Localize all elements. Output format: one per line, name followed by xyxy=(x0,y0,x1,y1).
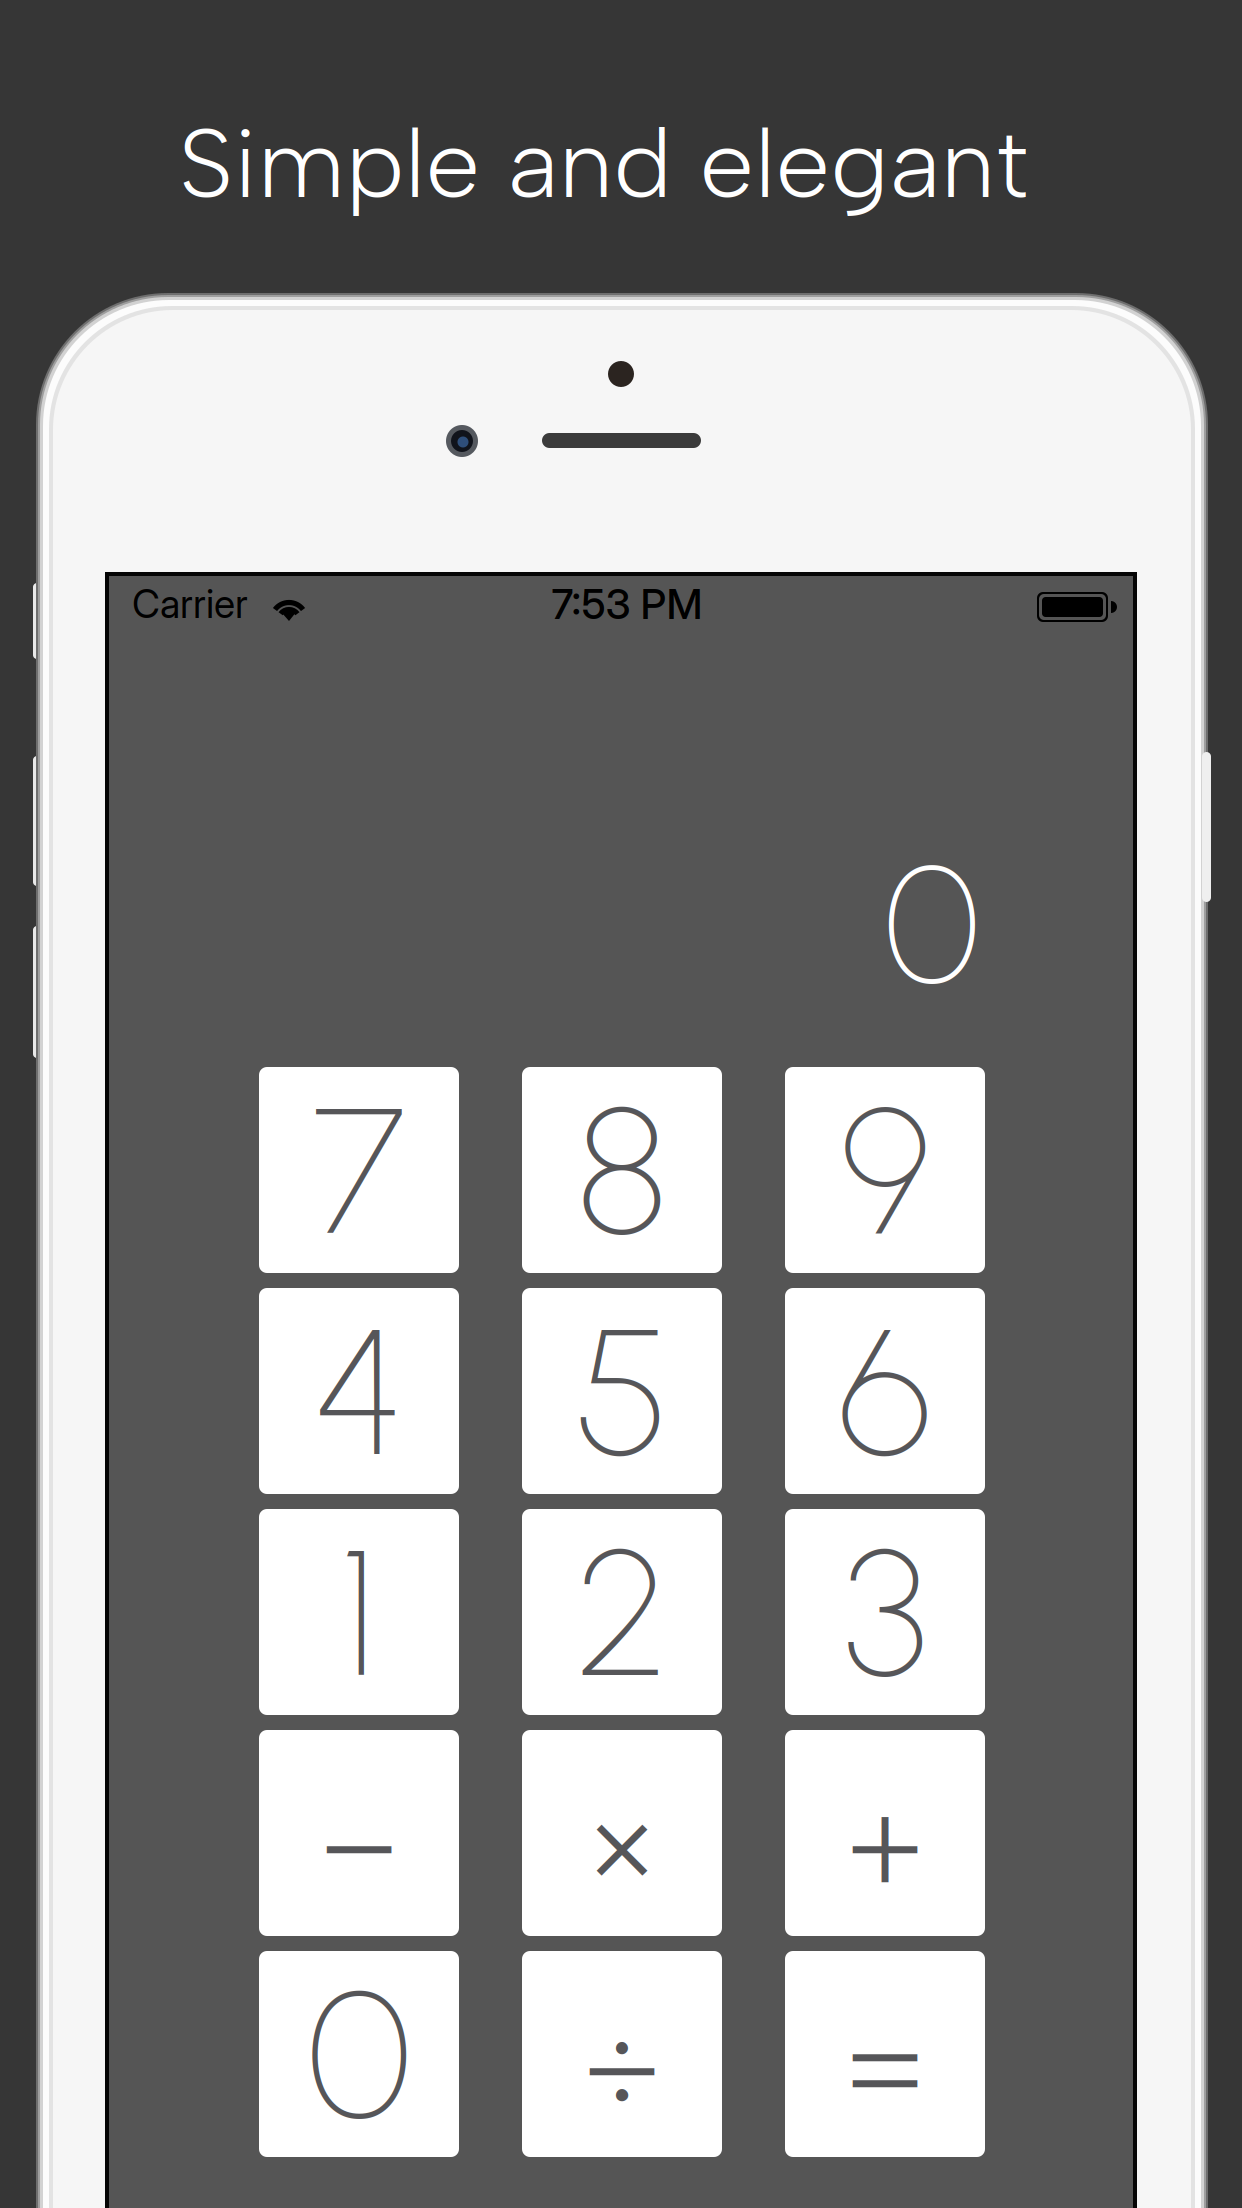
button[interactable]: 7 xyxy=(259,1067,459,1273)
staticText: 0 xyxy=(307,1949,411,2161)
staticText: = xyxy=(847,1987,922,2143)
button[interactable]: × xyxy=(522,1730,722,1936)
staticText: + xyxy=(847,1766,922,1922)
staticText: 6 xyxy=(838,1286,932,1498)
button[interactable]: + xyxy=(785,1730,985,1936)
button[interactable]: 5 xyxy=(522,1288,722,1494)
staticText: – xyxy=(319,1766,399,1922)
button[interactable]: 6 xyxy=(785,1288,985,1494)
button[interactable]: 3 xyxy=(785,1509,985,1715)
button[interactable]: 4 xyxy=(259,1288,459,1494)
button[interactable]: = xyxy=(785,1951,985,2157)
staticText: 7 xyxy=(312,1065,405,1277)
staticText: 8 xyxy=(576,1065,667,1277)
button[interactable]: 0 xyxy=(259,1951,459,2157)
staticText: 9 xyxy=(840,1065,930,1277)
staticText: 3 xyxy=(843,1507,927,1719)
staticText: Simple and elegant xyxy=(178,105,1029,221)
button[interactable]: ÷ xyxy=(522,1951,722,2157)
staticText: 0 xyxy=(884,827,980,1023)
button[interactable]: 1 xyxy=(259,1509,459,1715)
staticText: Carrier xyxy=(132,581,248,627)
button[interactable]: – xyxy=(259,1730,459,1936)
staticText: 5 xyxy=(574,1286,669,1498)
button[interactable]: 8 xyxy=(522,1067,722,1273)
staticText: 4 xyxy=(313,1286,405,1498)
staticText: 2 xyxy=(575,1507,668,1719)
staticText: × xyxy=(591,1766,652,1922)
button[interactable]: 9 xyxy=(785,1067,985,1273)
staticText: 7:53 PM xyxy=(551,579,702,629)
staticText: ÷ xyxy=(584,1987,659,2143)
staticText: 1 xyxy=(340,1507,378,1719)
button[interactable]: 2 xyxy=(522,1509,722,1715)
